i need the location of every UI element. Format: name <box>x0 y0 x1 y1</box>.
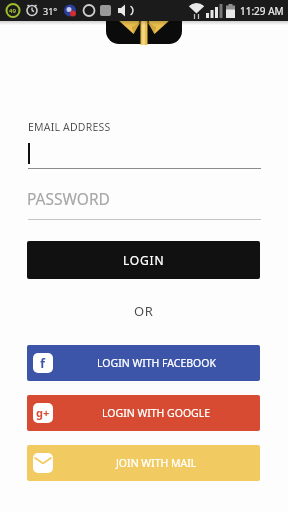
staticText: OR <box>134 302 154 320</box>
staticText: 11:29 AM <box>240 4 284 18</box>
staticText: LOGIN <box>123 252 165 268</box>
staticText: EMAIL ADDRESS <box>28 120 111 134</box>
button[interactable]: f <box>27 345 260 381</box>
staticText: JOIN WITH MAIL <box>116 456 197 470</box>
button[interactable]: LOGIN <box>27 241 260 279</box>
button[interactable]: g+ <box>27 395 260 431</box>
staticText: PASSWORD <box>27 188 110 209</box>
staticText: g+ <box>36 405 50 420</box>
button[interactable]: JOIN WITH MAIL <box>27 445 260 481</box>
staticText: 31° <box>43 5 58 17</box>
staticText: LOGIN WITH FACEBOOK <box>97 356 217 370</box>
staticText: 49 <box>9 7 16 15</box>
staticText: f <box>40 354 46 372</box>
staticText: LOGIN WITH GOOGLE <box>102 406 211 420</box>
